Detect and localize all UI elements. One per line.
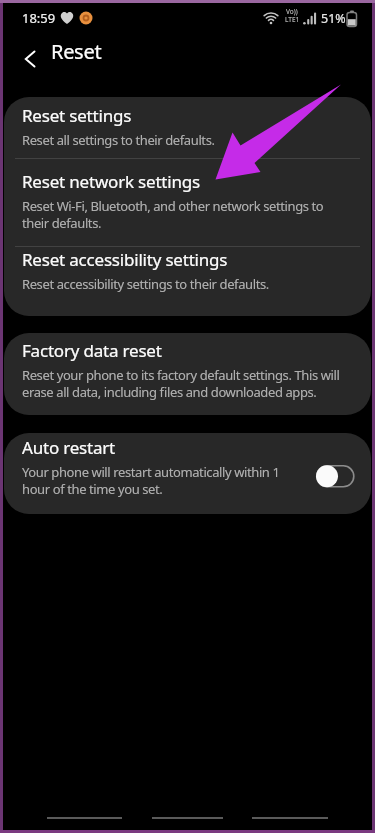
- staticText: 51%: [321, 10, 346, 27]
- button[interactable]: Auto restart: [4, 433, 371, 514]
- staticText: Vo)): [286, 7, 298, 16]
- staticText: Reset all settings to their defaults.: [22, 131, 215, 149]
- staticText: Reset: [51, 38, 102, 65]
- staticText: Your phone will restart automatically wi…: [22, 463, 280, 498]
- button[interactable]: [4, 158, 371, 246]
- staticText: Reset network settings: [22, 170, 200, 193]
- button[interactable]: Factory data reset: [4, 333, 371, 415]
- staticText: 18:59: [22, 9, 56, 27]
- staticText: Reset settings: [22, 104, 132, 127]
- staticText: Auto restart: [22, 436, 116, 459]
- button[interactable]: [4, 246, 371, 316]
- staticText: Reset Wi-Fi, Bluetooth, and other networ…: [22, 197, 324, 232]
- button[interactable]: [310, 459, 364, 492]
- staticText: Reset your phone to its factory default …: [22, 366, 340, 401]
- staticText: Reset accessibility settings to their de…: [22, 275, 269, 293]
- button[interactable]: [8, 42, 52, 76]
- staticText: LTE1: [285, 15, 300, 24]
- staticText: Factory data reset: [22, 339, 162, 362]
- staticText: Reset accessibility settings: [22, 248, 228, 271]
- button[interactable]: [4, 97, 371, 158]
